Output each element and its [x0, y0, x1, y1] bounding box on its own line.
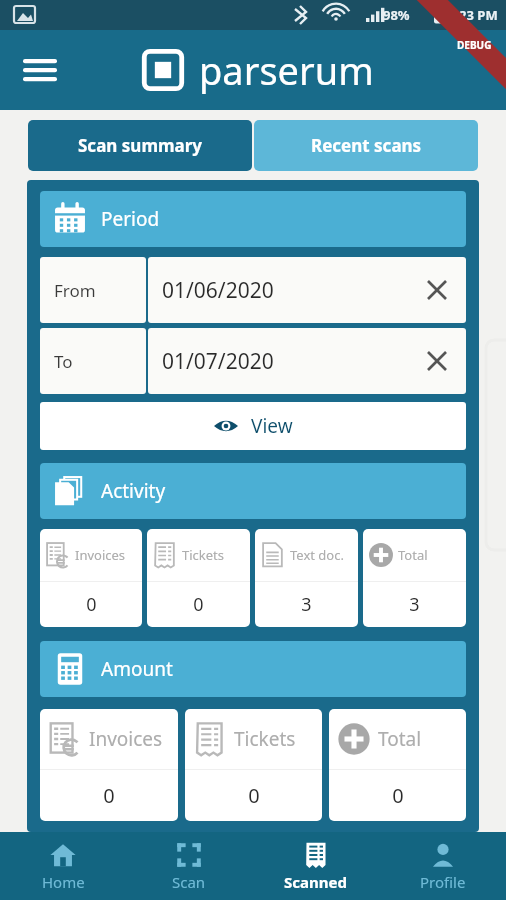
button[interactable]: Text doc.	[255, 529, 358, 627]
staticText: Home	[42, 872, 85, 892]
staticText: Invoices	[89, 726, 163, 752]
button[interactable]: Recent scans	[254, 120, 478, 171]
staticText: parserum	[199, 44, 374, 96]
button[interactable]: Scanned	[252, 832, 379, 900]
button[interactable]: Scan summary	[28, 120, 252, 171]
button[interactable]: Tickets	[147, 529, 250, 627]
button[interactable]: Period	[40, 191, 466, 247]
staticText: 0	[248, 782, 260, 809]
staticText: Profile	[420, 872, 466, 892]
staticText: 5:23 PM	[448, 6, 498, 24]
staticText: Text doc.	[290, 546, 344, 564]
button[interactable]: Invoices	[40, 709, 178, 821]
button[interactable]: Tickets	[185, 709, 322, 821]
staticText: DEBUG	[457, 38, 492, 52]
staticText: Total	[378, 726, 422, 752]
button[interactable]: From	[40, 257, 146, 323]
staticText: 0	[193, 592, 204, 617]
button[interactable]: Activity	[40, 463, 466, 519]
staticText: 0	[103, 782, 115, 809]
staticText: Scan summary	[78, 134, 203, 157]
button[interactable]: Scan	[126, 832, 252, 900]
button[interactable]: 01/06/2020	[148, 257, 466, 323]
staticText: Tickets	[234, 726, 296, 752]
staticText: Period	[101, 206, 160, 232]
staticText: 3	[409, 592, 420, 617]
staticText: Total	[398, 546, 428, 564]
staticText: Amount	[101, 656, 173, 682]
button[interactable]: Invoices	[40, 529, 142, 627]
button[interactable]: Clear From	[414, 267, 460, 313]
staticText: Recent scans	[311, 134, 422, 157]
staticText: 0	[392, 782, 404, 809]
staticText: Scanned	[284, 872, 347, 892]
staticText: Scan	[172, 872, 206, 892]
staticText: 01/07/2020	[162, 347, 414, 376]
staticText: From	[54, 279, 96, 302]
button[interactable]: Total	[363, 529, 466, 627]
staticText: Activity	[101, 478, 166, 504]
button[interactable]: Amount	[40, 641, 466, 697]
button[interactable]: To	[40, 328, 146, 394]
button[interactable]: Profile	[379, 832, 506, 900]
button[interactable]: Total	[329, 709, 466, 821]
button[interactable]: Home	[0, 832, 126, 900]
button[interactable]: Menu	[18, 48, 62, 92]
button[interactable]: View	[40, 402, 466, 450]
staticText: 98%	[383, 6, 410, 24]
staticText: Invoices	[75, 546, 126, 564]
staticText: Tickets	[182, 546, 225, 564]
button[interactable]: 01/07/2020	[148, 328, 466, 394]
staticText: 0	[86, 592, 97, 617]
staticText: To	[54, 350, 73, 373]
button[interactable]: Clear To	[414, 338, 460, 384]
staticText: View	[251, 413, 293, 439]
staticText: 3	[301, 592, 312, 617]
staticText: 01/06/2020	[162, 276, 414, 305]
